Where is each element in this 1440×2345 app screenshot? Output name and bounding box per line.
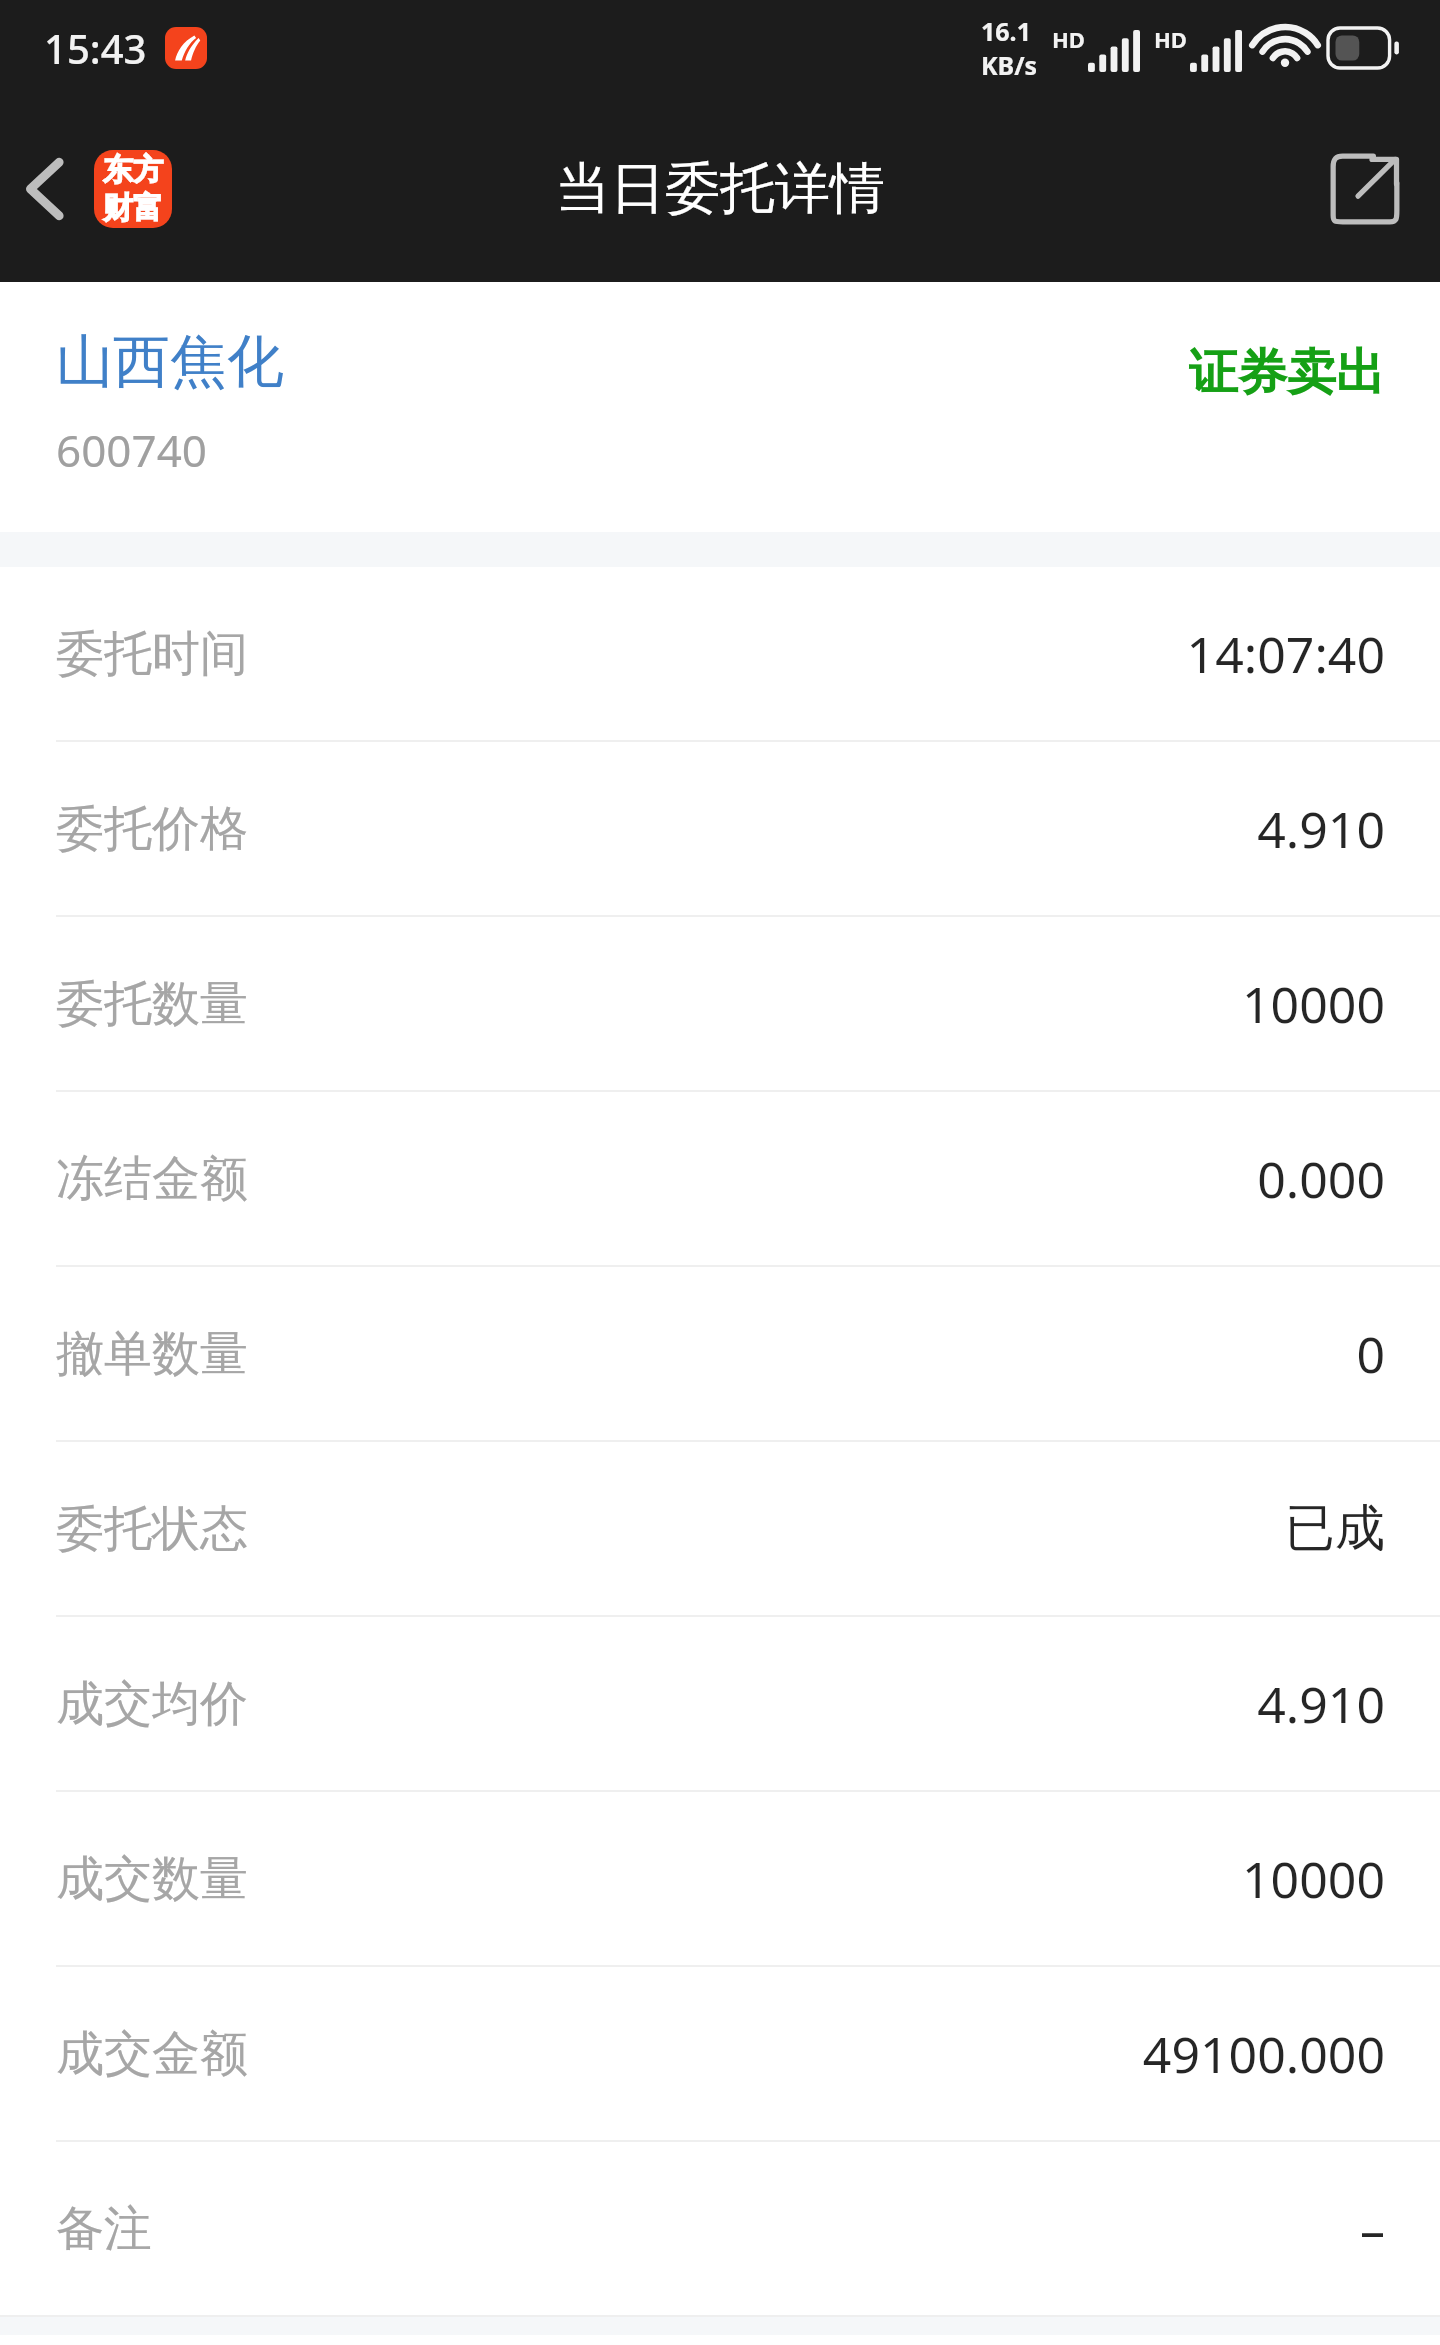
- staticText: 10000: [1242, 1845, 1385, 1913]
- staticText: 东方: [103, 151, 163, 189]
- staticText: 0: [1356, 1320, 1385, 1388]
- staticText: 成交数量: [56, 1849, 248, 1909]
- staticText: HD: [1154, 24, 1187, 54]
- staticText: HD: [1052, 24, 1085, 54]
- staticText: 成交均价: [56, 1674, 248, 1734]
- button[interactable]: Share: [1306, 129, 1440, 249]
- staticText: 备注: [56, 2199, 152, 2259]
- button[interactable]: 冻结金额: [0, 1092, 1440, 1265]
- staticText: 49100.000: [1142, 2020, 1385, 2088]
- staticText: 财富: [103, 189, 163, 227]
- button[interactable]: 备注: [0, 2142, 1440, 2315]
- button[interactable]: 委托时间: [0, 567, 1440, 740]
- staticText: 冻结金额: [56, 1149, 248, 1209]
- staticText: –: [1360, 2195, 1385, 2263]
- staticText: 委托时间: [56, 624, 248, 684]
- button[interactable]: 山西焦化: [0, 282, 1440, 532]
- staticText: 600740: [56, 420, 208, 480]
- staticText: 委托数量: [56, 974, 248, 1034]
- button[interactable]: 成交金额: [0, 1967, 1440, 2140]
- staticText: KB/s: [981, 48, 1038, 82]
- button[interactable]: 委托价格: [0, 742, 1440, 915]
- staticText: 已成: [1285, 1497, 1385, 1560]
- staticText: 委托价格: [56, 799, 248, 859]
- staticText: 0.000: [1257, 1145, 1385, 1213]
- button[interactable]: 撤单数量: [0, 1267, 1440, 1440]
- button[interactable]: 委托数量: [0, 917, 1440, 1090]
- staticText: 成交金额: [56, 2024, 248, 2084]
- staticText: 10000: [1242, 970, 1385, 1038]
- staticText: 证券卖出: [1189, 342, 1385, 404]
- button[interactable]: 成交数量: [0, 1792, 1440, 1965]
- button[interactable]: 委托状态: [0, 1442, 1440, 1615]
- staticText: 山西焦化: [56, 326, 284, 398]
- staticText: 14:07:40: [1186, 620, 1385, 688]
- staticText: 4.910: [1257, 795, 1385, 863]
- button[interactable]: Back: [0, 130, 192, 248]
- staticText: 16.1: [981, 14, 1031, 48]
- staticText: 当日委托详情: [555, 154, 885, 223]
- staticText: 4.910: [1257, 1670, 1385, 1738]
- button[interactable]: 成交均价: [0, 1617, 1440, 1790]
- staticText: 撤单数量: [56, 1324, 248, 1384]
- staticText: 委托状态: [56, 1499, 248, 1559]
- staticText: 15:43: [44, 21, 147, 75]
